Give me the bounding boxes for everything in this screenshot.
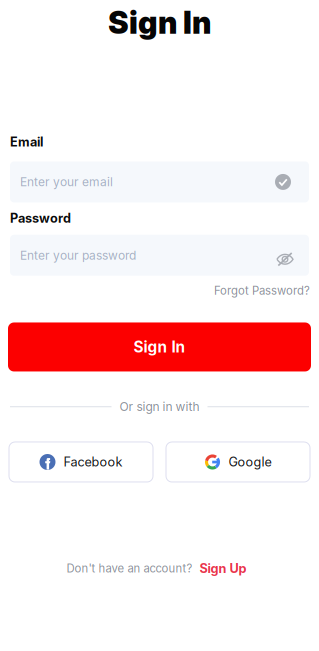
button[interactable]: Google (166, 442, 310, 482)
staticText: Enter your email (20, 175, 113, 189)
staticText: Facebook (63, 454, 122, 470)
button[interactable]: Sign Up (199, 561, 246, 576)
staticText: Don't have an account? (66, 561, 192, 575)
staticText: Sign In (108, 4, 211, 41)
staticText: Password (10, 210, 71, 226)
staticText: Google (228, 454, 271, 470)
staticText: Forgot Password? (214, 284, 310, 297)
button[interactable]: Forgot Password? (0, 284, 319, 297)
button[interactable]: Sign In (8, 322, 311, 371)
staticText: Enter your password (20, 248, 136, 262)
staticText: Or sign in with (119, 399, 199, 414)
staticText: Sign In (133, 338, 185, 356)
staticText: Email (10, 134, 43, 149)
staticText: Sign Up (199, 561, 246, 576)
button[interactable]: Facebook (9, 442, 153, 482)
